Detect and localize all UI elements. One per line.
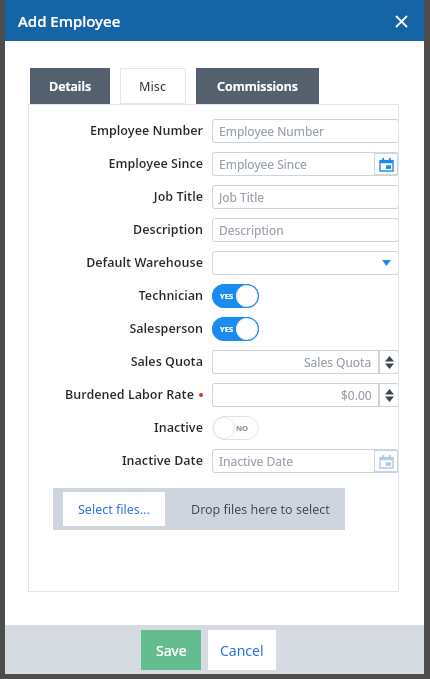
button[interactable]: Cancel [208,630,276,670]
button[interactable]: Employee Since [212,152,399,176]
staticText: Inactive Date [219,453,293,469]
button[interactable]: Select files... [63,492,165,526]
staticText: Add Employee [18,11,121,31]
staticText: Employee Number [219,123,325,139]
staticText: Description [219,222,284,238]
button[interactable]: Close [387,7,415,35]
staticText: Inactive [154,419,203,436]
staticText: Sales Quota [304,354,372,370]
button[interactable]: Sales Quota [212,350,379,374]
staticText: Select files... [78,501,150,518]
button[interactable]: Increment or decrement [379,383,399,407]
button[interactable]: Description [212,218,399,242]
staticText: Misc [139,78,167,95]
staticText: Inactive Date [121,452,203,469]
button[interactable]: Commissions [196,68,319,104]
button[interactable]: Toggle NO [212,416,259,440]
staticText: YES [220,324,234,334]
button[interactable]: Toggle YES [212,284,259,308]
staticText: YES [220,291,234,301]
button[interactable]: Save [141,630,201,670]
button[interactable]: $0.00 [212,383,379,407]
button[interactable]: Open calendar [374,450,398,472]
button[interactable]: Employee Number [212,119,399,143]
button[interactable]: Misc [120,68,186,104]
staticText: Default Warehouse [86,254,203,271]
staticText: Employee Number [90,122,203,139]
staticText: Drop files here to select [191,501,330,518]
staticText: Burdened Labor Rate [65,386,194,403]
staticText: Salesperson [129,320,203,337]
staticText: Employee Since [219,156,307,172]
button[interactable]: Default Warehouse dropdown [212,251,399,275]
staticText: Details [49,78,92,95]
staticText: Job Title [219,189,265,205]
button[interactable]: Job Title [212,185,399,209]
staticText: $0.00 [341,387,372,403]
staticText: NO [236,423,249,433]
staticText: Cancel [220,641,264,660]
button[interactable]: Details [30,68,110,104]
staticText: Sales Quota [130,353,203,370]
staticText: Technician [138,287,203,304]
staticText: Employee Since [108,155,203,172]
button[interactable]: Open calendar [374,153,398,175]
staticText: Job Title [153,188,203,205]
staticText: Description [133,221,203,238]
staticText: Save [156,641,187,660]
button[interactable]: Increment or decrement [379,350,399,374]
button[interactable]: Inactive Date [212,449,399,473]
button[interactable]: Toggle YES [212,317,259,341]
staticText: Commissions [217,78,298,95]
